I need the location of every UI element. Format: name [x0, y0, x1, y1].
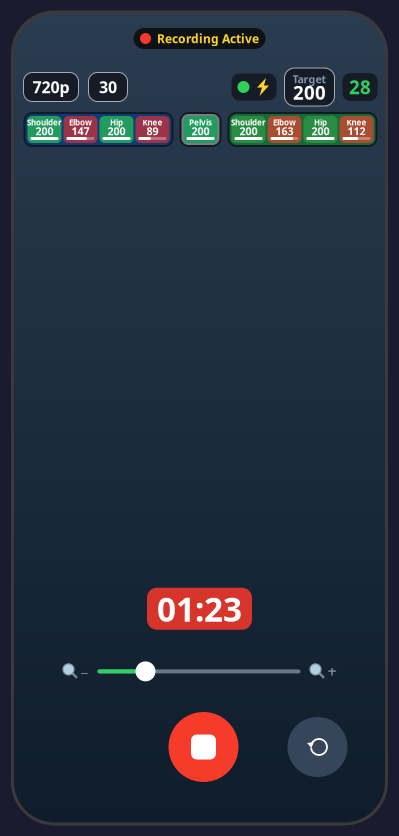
- button[interactable]: Frames per second: [342, 73, 377, 101]
- button[interactable]: Stop recording: [168, 712, 238, 782]
- staticText: Knee: [346, 117, 366, 128]
- staticText: 200: [35, 124, 53, 138]
- staticText: 200: [191, 124, 209, 138]
- button[interactable]: Reset: [287, 717, 347, 777]
- staticText: Target: [292, 72, 326, 86]
- button[interactable]: Flash: [231, 73, 276, 100]
- staticText: 147: [71, 124, 89, 138]
- staticText: 89: [146, 124, 158, 138]
- staticText: Pelvis: [189, 117, 212, 128]
- button[interactable]: Recording Active: [133, 28, 265, 49]
- staticText: 163: [275, 124, 293, 138]
- staticText: 200: [239, 124, 257, 138]
- staticText: 200: [293, 80, 326, 105]
- staticText: 200: [311, 124, 329, 138]
- staticText: Shoulder: [231, 117, 266, 128]
- staticText: 30: [99, 76, 117, 98]
- button[interactable]: 720p: [23, 72, 78, 101]
- button[interactable]: 30: [88, 72, 127, 101]
- staticText: 01:23: [157, 587, 242, 631]
- staticText: Hip: [110, 117, 123, 128]
- staticText: +: [327, 661, 336, 682]
- staticText: 200: [107, 124, 125, 138]
- staticText: Elbow: [69, 117, 92, 128]
- button[interactable]: Target: [284, 68, 334, 106]
- staticText: Hip: [314, 117, 327, 128]
- staticText: Knee: [142, 117, 162, 128]
- staticText: Recording Active: [157, 30, 259, 46]
- staticText: 112: [347, 124, 365, 138]
- staticText: –: [80, 661, 88, 682]
- staticText: 28: [349, 75, 371, 99]
- staticText: 720p: [32, 76, 69, 98]
- staticText: Elbow: [273, 117, 296, 128]
- staticText: Shoulder: [27, 117, 62, 128]
